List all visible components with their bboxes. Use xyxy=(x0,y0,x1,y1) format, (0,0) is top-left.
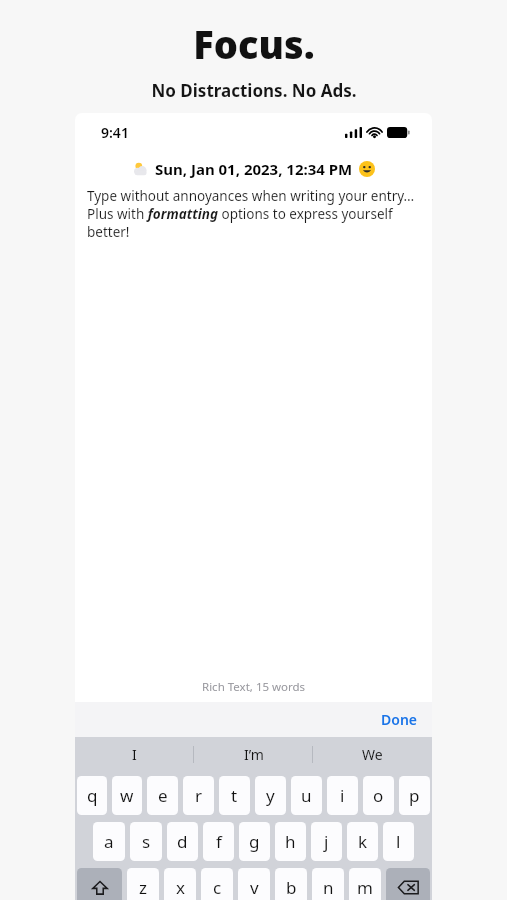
staticText: w xyxy=(120,784,134,807)
button[interactable]: c xyxy=(201,868,233,900)
staticText: x xyxy=(176,876,185,899)
button[interactable]: v xyxy=(238,868,270,900)
staticText: c xyxy=(213,876,222,899)
staticText: e xyxy=(158,784,168,807)
button[interactable]: k xyxy=(347,822,378,861)
staticText: t xyxy=(231,784,238,807)
staticText: q xyxy=(87,784,98,807)
button[interactable]: I’m xyxy=(194,737,313,772)
button[interactable]: j xyxy=(311,822,342,861)
button[interactable]: z xyxy=(127,868,159,900)
button[interactable]: d xyxy=(167,822,198,861)
staticText: Done xyxy=(381,710,418,729)
staticText: b xyxy=(286,876,297,899)
staticText: j xyxy=(324,830,329,853)
button[interactable]: Shift xyxy=(77,868,122,900)
staticText: o xyxy=(373,784,384,807)
staticText: s xyxy=(142,830,151,853)
staticText: a xyxy=(104,830,114,853)
button[interactable]: Done xyxy=(367,704,432,735)
staticText: i xyxy=(340,784,345,807)
button[interactable]: i xyxy=(327,776,358,815)
staticText: Rich Text, 15 words xyxy=(202,679,306,695)
staticText: n xyxy=(323,876,334,899)
staticText: Type without annoyances when writing you… xyxy=(87,187,420,241)
button[interactable]: r xyxy=(183,776,214,815)
staticText: I xyxy=(132,745,137,764)
staticText: Focus. xyxy=(193,18,315,70)
button[interactable]: n xyxy=(312,868,344,900)
staticText: We xyxy=(362,745,383,764)
button[interactable]: g xyxy=(239,822,270,861)
staticText: p xyxy=(409,784,420,807)
button[interactable]: w xyxy=(112,776,142,815)
button[interactable]: I xyxy=(75,737,194,772)
staticText: 9:41 xyxy=(101,123,129,142)
button[interactable]: q xyxy=(77,776,107,815)
button[interactable]: m xyxy=(349,868,381,900)
staticText: No Distractions. No Ads. xyxy=(151,79,357,102)
staticText: I’m xyxy=(244,745,264,764)
staticText: r xyxy=(195,784,203,807)
staticText: d xyxy=(177,830,188,853)
staticText: Sun, Jan 01, 2023, 12:34 PM xyxy=(155,159,353,179)
button[interactable]: Backspace xyxy=(386,868,430,900)
staticText: l xyxy=(396,830,401,853)
button[interactable]: y xyxy=(255,776,286,815)
staticText: u xyxy=(301,784,312,807)
staticText: k xyxy=(358,830,368,853)
staticText: h xyxy=(285,830,296,853)
staticText: f xyxy=(216,830,222,853)
button[interactable]: We xyxy=(313,737,432,772)
staticText: m xyxy=(357,876,373,899)
button[interactable]: e xyxy=(147,776,178,815)
button[interactable]: p xyxy=(399,776,430,815)
button[interactable]: u xyxy=(291,776,322,815)
button[interactable]: a xyxy=(93,822,125,861)
button[interactable]: s xyxy=(130,822,162,861)
staticText: g xyxy=(249,830,260,853)
button[interactable]: o xyxy=(363,776,394,815)
button[interactable]: f xyxy=(203,822,234,861)
staticText: z xyxy=(139,876,147,899)
button[interactable]: h xyxy=(275,822,306,861)
staticText: y xyxy=(266,784,275,807)
button[interactable]: x xyxy=(164,868,196,900)
staticText: v xyxy=(250,876,259,899)
button[interactable]: t xyxy=(219,776,250,815)
button[interactable]: l xyxy=(383,822,414,861)
button[interactable]: b xyxy=(275,868,307,900)
